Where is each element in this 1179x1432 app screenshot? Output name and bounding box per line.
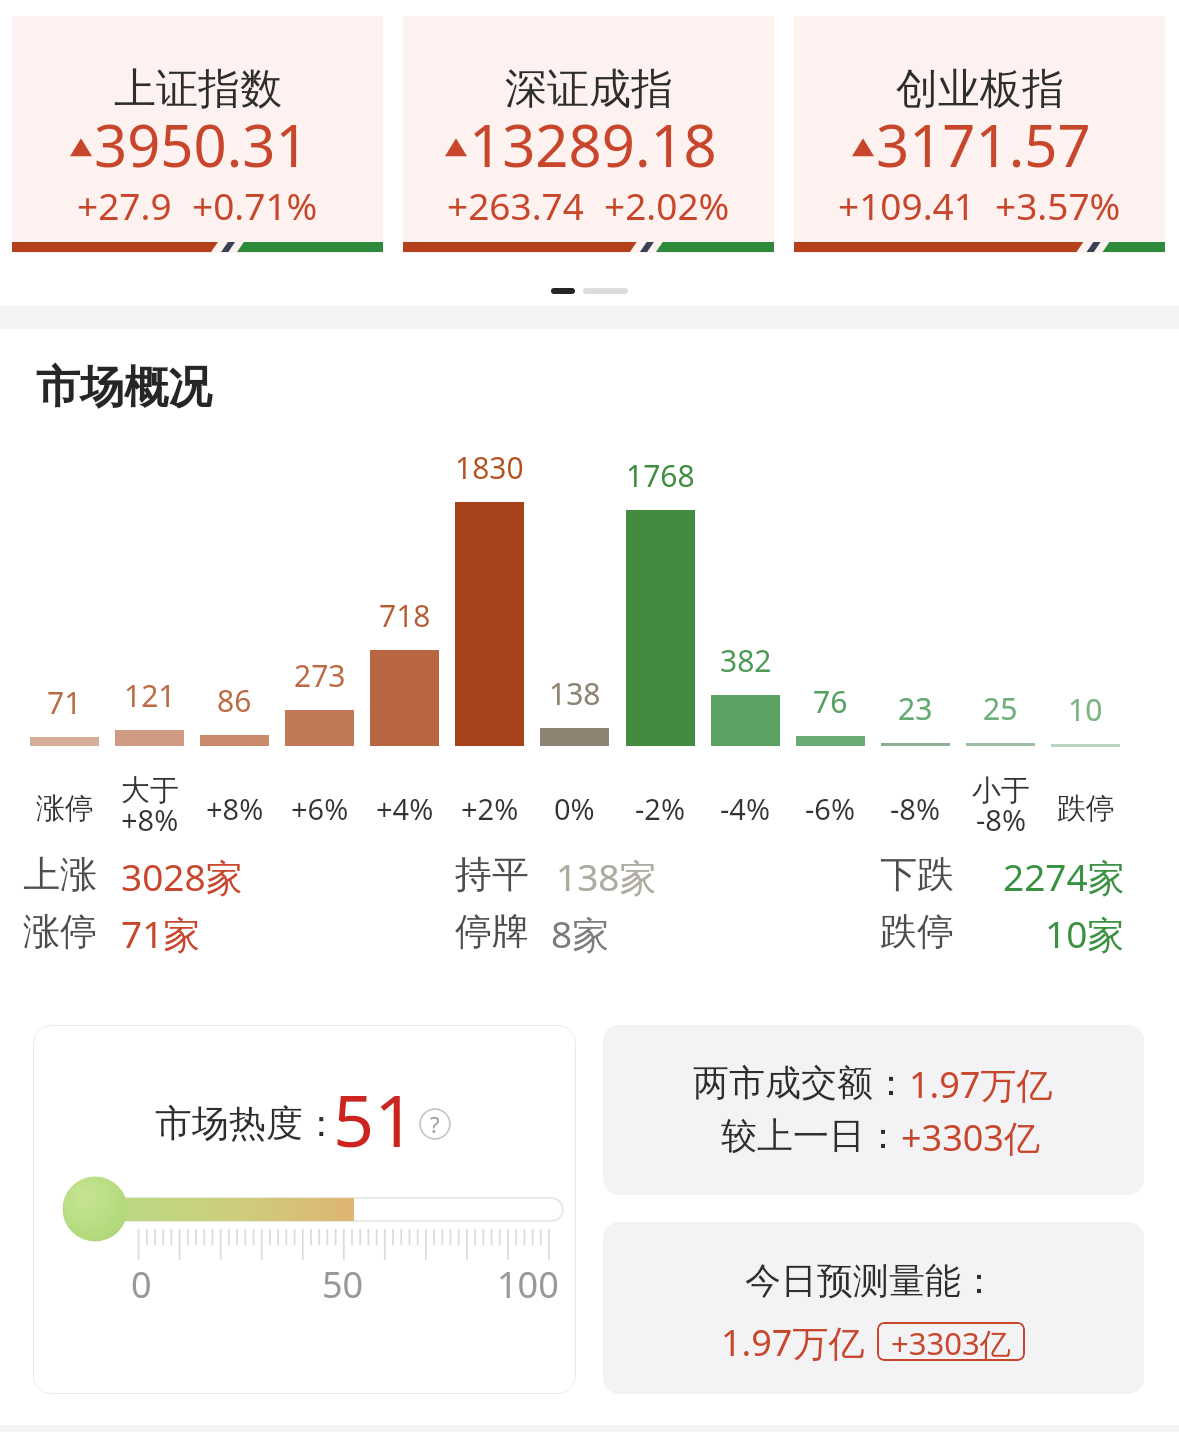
staticText: 138	[549, 673, 601, 714]
staticText: 跌停	[880, 908, 954, 955]
staticText: +8%	[121, 800, 179, 835]
staticText: -2%	[635, 789, 686, 828]
button[interactable]: 今日预测量能：	[603, 1222, 1144, 1394]
staticText: +109.41	[838, 180, 975, 230]
staticText: -4%	[720, 789, 771, 828]
staticText: 273	[294, 655, 346, 696]
staticText: 上证指数	[114, 63, 282, 116]
staticText: 大于	[121, 772, 179, 809]
staticText: 停牌	[455, 908, 529, 955]
staticText: +2%	[461, 789, 519, 828]
staticText: 持平	[455, 851, 529, 898]
staticText: -6%	[805, 789, 856, 828]
button[interactable]: 市场热度：	[33, 1025, 576, 1394]
staticText: 86	[217, 680, 252, 721]
staticText: 71家	[121, 908, 201, 959]
staticText: +3303亿	[901, 1113, 1040, 1162]
staticText: +263.74	[447, 180, 584, 230]
staticText: 3950.31	[94, 105, 309, 184]
staticText: 小于	[972, 772, 1030, 809]
staticText: 121	[124, 675, 176, 716]
staticText: 76	[813, 681, 848, 722]
staticText: 上涨	[23, 851, 97, 898]
staticText: 10	[1068, 689, 1103, 730]
staticText: ?	[430, 1109, 440, 1139]
staticText: +27.9	[77, 180, 172, 230]
staticText: 10家	[1045, 908, 1125, 959]
staticText: 两市成交额：	[693, 1060, 909, 1105]
staticText: 13289.18	[469, 105, 717, 184]
staticText: +4%	[376, 789, 434, 828]
staticText: 1.97万亿	[721, 1318, 865, 1367]
button[interactable]: 两市成交额：	[603, 1025, 1144, 1195]
staticText: +3.57%	[995, 180, 1121, 230]
staticText: +3303亿	[891, 1322, 1011, 1361]
staticText: 71	[47, 682, 82, 723]
staticText: 100	[497, 1260, 559, 1309]
staticText: 下跌	[880, 851, 954, 898]
staticText: -8%	[976, 800, 1027, 835]
staticText: 涨停	[36, 790, 94, 827]
staticText: 25	[983, 688, 1018, 729]
button[interactable]: 创业板指	[794, 16, 1165, 253]
staticText: 创业板指	[896, 63, 1064, 116]
staticText: 3171.57	[876, 105, 1091, 184]
staticText: 718	[379, 595, 431, 636]
staticText: 23	[898, 688, 933, 729]
staticText: 51	[333, 1070, 416, 1168]
staticText: 1830	[455, 447, 524, 488]
staticText: +8%	[206, 789, 264, 828]
staticText: 0	[131, 1260, 152, 1309]
staticText: 市场概况	[36, 360, 212, 415]
staticText: 8家	[551, 908, 610, 959]
staticText: 382	[720, 640, 772, 681]
staticText: 1768	[626, 455, 695, 496]
staticText: +2.02%	[604, 180, 730, 230]
staticText: 较上一日：	[721, 1113, 901, 1158]
staticText: 50	[322, 1260, 364, 1309]
staticText: 2274家	[1003, 851, 1125, 902]
button[interactable]: 深证成指	[403, 16, 774, 253]
staticText: 3028家	[121, 851, 243, 902]
staticText: 今日预测量能：	[745, 1258, 997, 1303]
button[interactable]: 帮助	[419, 1108, 451, 1140]
staticText: +6%	[291, 789, 349, 828]
staticText: +0.71%	[192, 180, 318, 230]
button[interactable]: 上证指数	[12, 16, 383, 253]
button[interactable]: +3303亿	[877, 1322, 1025, 1361]
staticText: 深证成指	[505, 63, 673, 116]
staticText: 1.97万亿	[909, 1060, 1053, 1109]
staticText: -8%	[890, 789, 941, 828]
staticText: 138家	[556, 851, 657, 902]
staticText: 涨停	[23, 908, 97, 955]
staticText: 跌停	[1057, 790, 1115, 827]
staticText: 市场热度：	[155, 1100, 340, 1147]
staticText: 0%	[554, 789, 595, 828]
